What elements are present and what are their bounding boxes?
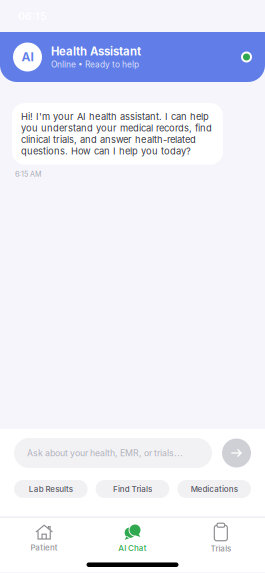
staticText: AI: [21, 50, 33, 64]
staticText: Find Trials: [113, 484, 152, 494]
button[interactable]: Medications: [177, 480, 251, 498]
button[interactable]: AI Chat: [88, 523, 177, 553]
button[interactable]: Patient: [0, 524, 88, 552]
staticText: 06:15: [18, 9, 47, 22]
button[interactable]: Find Trials: [96, 480, 169, 498]
staticText: AI Chat: [118, 543, 147, 553]
button[interactable]: Ask about your health, EMR, or trials...: [14, 438, 212, 468]
button[interactable]: Trials: [177, 523, 265, 553]
staticText: Lab Results: [29, 484, 73, 494]
staticText: Trials: [211, 544, 231, 553]
staticText: Online • Ready to help: [51, 59, 139, 69]
staticText: Ask about your health, EMR, or trials...: [27, 448, 183, 458]
staticText: Hi! I'm your AI health assistant. I can …: [21, 111, 212, 157]
staticText: Patient: [30, 543, 58, 552]
staticText: Health Assistant: [51, 45, 141, 58]
staticText: 6:15 AM: [15, 170, 42, 178]
staticText: Medications: [191, 484, 238, 494]
button[interactable]: Send: [222, 438, 251, 467]
button[interactable]: Lab Results: [14, 480, 88, 498]
